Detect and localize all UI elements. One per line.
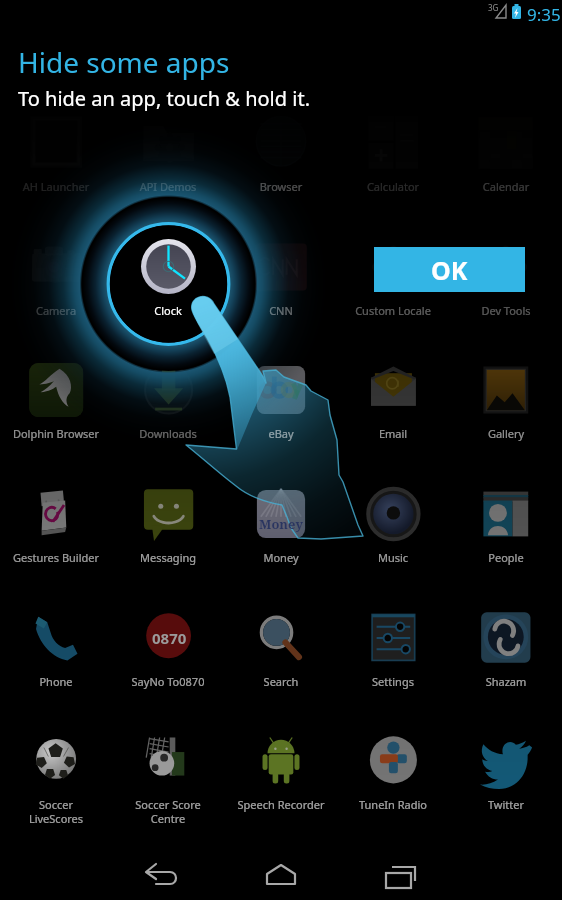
- button[interactable]: Dev Tools: [450, 233, 562, 339]
- button[interactable]: SayNo To0870: [112, 604, 224, 710]
- button[interactable]: Calculator: [337, 109, 449, 215]
- button[interactable]: Home: [257, 852, 305, 900]
- button[interactable]: OK: [374, 247, 525, 292]
- button[interactable]: Gestures Builder: [0, 480, 112, 586]
- button[interactable]: Custom Locale: [337, 233, 449, 339]
- button[interactable]: Back: [138, 852, 186, 900]
- staticText: Dev Tools: [462, 303, 550, 318]
- button[interactable]: Gallery: [450, 356, 562, 462]
- staticText: 3G: [488, 2, 499, 13]
- staticText: Music: [349, 550, 437, 565]
- staticText: Shazam: [462, 674, 550, 689]
- button[interactable]: TuneIn Radio: [337, 727, 449, 833]
- staticText: Camera: [12, 303, 100, 318]
- staticText: TuneIn Radio: [349, 797, 437, 812]
- button[interactable]: Calendar: [450, 109, 562, 215]
- button[interactable]: CNN: [225, 233, 337, 339]
- staticText: Calendar: [462, 179, 550, 194]
- staticText: Money: [237, 550, 325, 565]
- staticText: Soccer Score Centre: [124, 797, 212, 826]
- staticText: SayNo To0870: [124, 674, 212, 689]
- button[interactable]: Soccer Score Centre: [112, 727, 224, 833]
- staticText: Email: [349, 426, 437, 441]
- staticText: Hide some apps: [18, 43, 230, 81]
- staticText: CNN: [237, 303, 325, 318]
- staticText: 0870: [152, 628, 187, 648]
- button[interactable]: Browser: [225, 109, 337, 215]
- staticText: To hide an app, touch & hold it.: [18, 85, 311, 112]
- staticText: Speech Recorder: [237, 797, 325, 812]
- staticText: Messaging: [124, 550, 212, 565]
- button[interactable]: API Demos: [112, 109, 224, 215]
- button[interactable]: Downloads: [112, 356, 224, 462]
- button[interactable]: Speech Recorder: [225, 727, 337, 833]
- staticText: AH Launcher: [12, 179, 100, 194]
- staticText: Dolphin Browser: [12, 426, 100, 441]
- staticText: Search: [237, 674, 325, 689]
- button[interactable]: People: [450, 480, 562, 586]
- staticText: Money: [259, 515, 303, 533]
- staticText: People: [462, 550, 550, 565]
- staticText: Clock: [124, 303, 212, 318]
- button[interactable]: Shazam: [450, 604, 562, 710]
- button[interactable]: eBay: [225, 356, 337, 462]
- staticText: API Demos: [124, 179, 212, 194]
- button[interactable]: Twitter: [450, 727, 562, 833]
- button[interactable]: Clock: [112, 233, 224, 339]
- staticText: Calculator: [349, 179, 437, 194]
- staticText: OK: [431, 253, 468, 287]
- button[interactable]: Money: [225, 480, 337, 586]
- button[interactable]: Recent apps: [376, 852, 424, 900]
- staticText: Browser: [237, 179, 325, 194]
- button[interactable]: Music: [337, 480, 449, 586]
- button[interactable]: Email: [337, 356, 449, 462]
- button[interactable]: Search: [225, 604, 337, 710]
- staticText: 9:35: [527, 3, 561, 26]
- staticText: Soccer LiveScores: [12, 797, 100, 826]
- staticText: eBay: [237, 426, 325, 441]
- staticText: Downloads: [124, 426, 212, 441]
- staticText: Settings: [349, 674, 437, 689]
- button[interactable]: Phone: [0, 604, 112, 710]
- staticText: Twitter: [462, 797, 550, 812]
- staticText: Gestures Builder: [12, 550, 100, 565]
- staticText: Gallery: [462, 426, 550, 441]
- staticText: Custom Locale: [349, 303, 437, 318]
- staticText: Phone: [12, 674, 100, 689]
- button[interactable]: Messaging: [112, 480, 224, 586]
- button[interactable]: Settings: [337, 604, 449, 710]
- button[interactable]: Soccer LiveScores: [0, 727, 112, 833]
- button[interactable]: Camera: [0, 233, 112, 339]
- button[interactable]: Dolphin Browser: [0, 356, 112, 462]
- button[interactable]: AH Launcher: [0, 109, 112, 215]
